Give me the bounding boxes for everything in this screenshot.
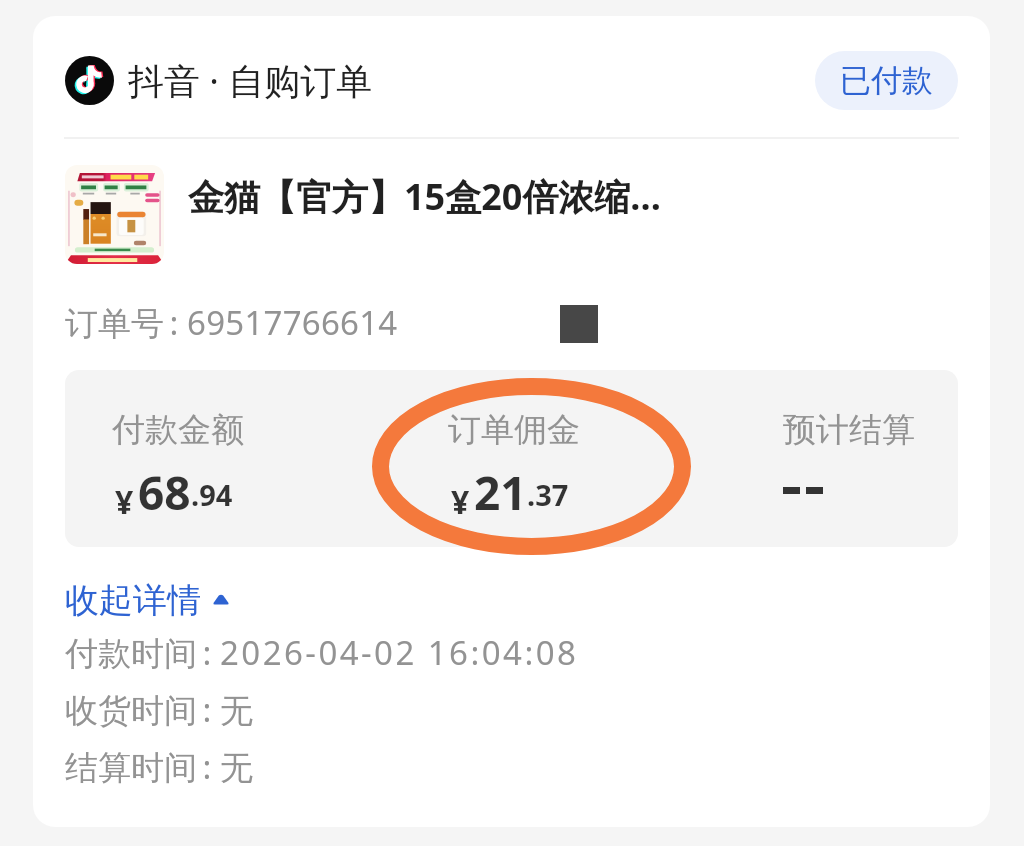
staticText: 付款时间 :: [65, 630, 220, 675]
staticText: 收起详情: [65, 579, 201, 622]
staticText: 抖音 · 自购订单: [128, 56, 373, 105]
staticText: ¥: [451, 480, 470, 524]
staticText: 预计结算: [783, 409, 915, 451]
staticText: 订单号 :: [65, 300, 187, 345]
staticText: 金猫【官方】15盒20倍浓缩…: [188, 172, 958, 221]
staticText: 68: [138, 461, 191, 517]
staticText: 69517766614: [187, 300, 398, 345]
staticText: 付款金额: [112, 409, 244, 451]
staticText: 收货时间 : 无: [65, 687, 253, 732]
button[interactable]: 收起详情: [65, 579, 229, 622]
staticText: 21: [474, 461, 527, 517]
button[interactable]: 已付款: [815, 51, 958, 110]
staticText: ¥: [115, 480, 134, 524]
button[interactable]: 金猫【官方】15盒20倍浓缩…: [65, 165, 958, 264]
staticText: 2026-04-02 16:04:08: [220, 630, 579, 675]
staticText: .94: [191, 475, 233, 514]
staticText: .37: [527, 475, 569, 514]
staticText: 结算时间 : 无: [65, 744, 253, 789]
staticText: 已付款: [840, 61, 933, 100]
staticText: 订单佣金: [448, 409, 580, 451]
button[interactable]: 抖音 · 自购订单: [65, 50, 373, 111]
